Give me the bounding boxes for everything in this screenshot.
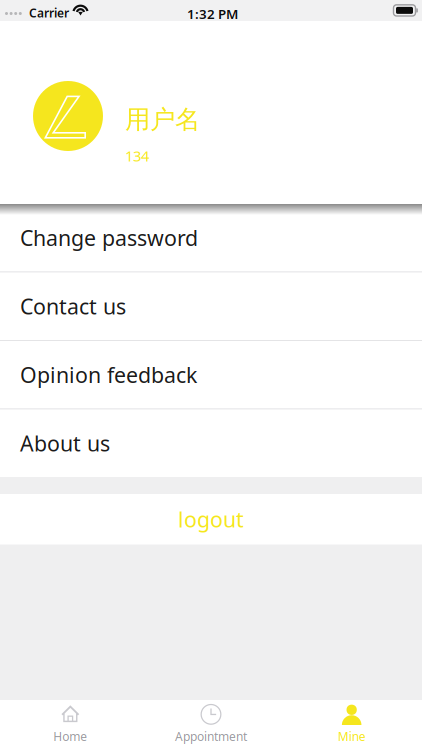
button[interactable]: Home [0,700,141,750]
staticText: 134 [125,146,149,165]
button[interactable]: logout [0,494,422,544]
staticText: Home [53,728,87,744]
button[interactable]: Profile photo [33,81,103,151]
staticText: Carrier [29,5,69,21]
staticText: Change password [20,224,198,252]
button[interactable]: Opinion feedback [0,341,422,408]
staticText: Mine [338,728,366,744]
button[interactable]: Mine [281,700,422,750]
button[interactable]: Appointment [141,700,281,750]
staticText: 1:32 PM [187,5,238,23]
staticText: 用户名 [125,104,200,135]
staticText: About us [20,429,110,457]
button[interactable]: Change password [0,204,422,271]
staticText: Opinion feedback [20,361,197,389]
staticText: logout [178,505,244,533]
staticText: Appointment [175,728,247,744]
button[interactable]: About us [0,409,422,477]
staticText: Contact us [20,292,126,320]
button[interactable]: Contact us [0,272,422,340]
